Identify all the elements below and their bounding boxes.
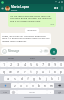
staticText: Yes — [52, 57, 56, 60]
staticText: f — [27, 77, 29, 81]
staticText: Yesterday — [27, 29, 37, 32]
staticText: z — [14, 84, 16, 88]
button[interactable]: 4 — [21, 62, 28, 67]
button[interactable]: Yes — [43, 56, 64, 61]
button[interactable]: z — [11, 83, 18, 88]
staticText: c — [26, 84, 28, 88]
staticText: x — [20, 84, 22, 88]
button[interactable]: Space — [17, 90, 47, 94]
staticText: Great, let's plan on Thursday afternoon … — [2, 34, 50, 43]
button[interactable]: 2 — [7, 62, 14, 67]
button[interactable]: a — [4, 76, 11, 81]
staticText: 1 — [3, 63, 5, 67]
staticText: 7 — [42, 63, 44, 67]
staticText: w — [9, 70, 12, 74]
button[interactable]: y — [34, 69, 40, 74]
button[interactable] — [5, 6, 10, 11]
staticText: v — [32, 84, 34, 88]
staticText: 9 — [54, 63, 56, 67]
button[interactable]: Emoji — [10, 90, 17, 94]
button[interactable]: 7 — [40, 62, 46, 67]
staticText: 2 — [10, 63, 12, 67]
button[interactable]: p — [58, 69, 64, 74]
button[interactable]: q — [0, 69, 7, 74]
button[interactable]: Great — [0, 56, 22, 61]
staticText: k — [51, 77, 53, 81]
staticText: j — [46, 77, 47, 81]
button[interactable]: More options — [59, 4, 64, 12]
button[interactable]: Message — [1, 47, 49, 55]
button[interactable]: e — [14, 69, 21, 74]
staticText: Message — [8, 49, 20, 53]
staticText: m — [50, 84, 53, 88]
button[interactable]: 3 — [14, 62, 21, 67]
button[interactable]: o — [52, 69, 58, 74]
button[interactable]: n — [42, 83, 48, 88]
button[interactable]: Video call — [52, 4, 59, 12]
staticText: 0 — [60, 63, 62, 67]
button[interactable]: 5 — [28, 62, 34, 67]
button[interactable]: m — [48, 83, 54, 88]
button[interactable]: 6 — [34, 62, 40, 67]
button[interactable]: d — [18, 76, 25, 81]
staticText: l — [58, 77, 59, 81]
staticText: o — [54, 70, 56, 74]
button[interactable]: s — [11, 76, 18, 81]
staticText: 10:24 — [50, 23, 55, 25]
button[interactable]: Enter — [54, 90, 64, 94]
button[interactable]: . — [47, 90, 54, 94]
button[interactable]: 8 — [46, 62, 52, 67]
staticText: t — [30, 70, 32, 74]
staticText: 3 — [17, 63, 19, 67]
button[interactable]: r — [21, 69, 28, 74]
button[interactable]: t — [28, 69, 34, 74]
button[interactable]: Great, let's plan on Thursday afternoon … — [1, 33, 51, 45]
button[interactable]: Back — [0, 4, 5, 12]
button[interactable]: g — [31, 76, 37, 81]
button[interactable]: j — [43, 76, 49, 81]
staticText: 6 — [36, 63, 38, 67]
button[interactable]: i — [46, 69, 52, 74]
staticText: Telugu — [29, 91, 35, 94]
button[interactable]: w — [7, 69, 14, 74]
button[interactable]: c — [24, 83, 30, 88]
button[interactable]: 0 — [58, 62, 64, 67]
staticText: 4 — [24, 63, 26, 67]
button[interactable]: Backspace — [54, 83, 64, 88]
staticText: . — [50, 90, 51, 94]
staticText: q — [3, 70, 5, 74]
staticText: e — [17, 70, 19, 74]
staticText: b — [38, 84, 40, 88]
button[interactable]: v — [30, 83, 36, 88]
staticText: a — [7, 77, 9, 81]
button[interactable]: b — [36, 83, 42, 88]
staticText: ?123 — [3, 91, 8, 94]
button[interactable]: x — [18, 83, 24, 88]
button[interactable]: k — [49, 76, 55, 81]
button[interactable]: f — [25, 76, 31, 81]
button[interactable]: Hi! I'm really glad we could catch up. I… — [8, 13, 56, 27]
staticText: y — [36, 70, 38, 74]
staticText: s — [14, 77, 16, 81]
staticText: Great — [8, 57, 14, 60]
staticText: i — [49, 70, 50, 74]
button[interactable]: h — [37, 76, 43, 81]
button[interactable]: Shift — [0, 83, 11, 88]
button[interactable]: u — [40, 69, 46, 74]
staticText: r — [24, 70, 26, 74]
staticText: h — [39, 77, 41, 81]
button[interactable]: 9 — [52, 62, 58, 67]
staticText: p — [60, 70, 62, 74]
staticText: Sure — [30, 57, 35, 60]
staticText: n — [44, 84, 46, 88]
button[interactable]: 1 — [0, 62, 7, 67]
staticText: g — [33, 77, 35, 81]
button[interactable]: Voice message — [50, 48, 57, 55]
staticText: Hi! I'm really glad we could catch up. I… — [10, 14, 55, 23]
button[interactable]: Sure — [22, 56, 43, 61]
staticText: 8 — [48, 63, 50, 67]
staticText: u — [42, 70, 44, 74]
button[interactable]: ?123 — [0, 90, 10, 94]
button[interactable]: l — [55, 76, 61, 81]
staticText: Maria Lopez — [11, 5, 30, 9]
